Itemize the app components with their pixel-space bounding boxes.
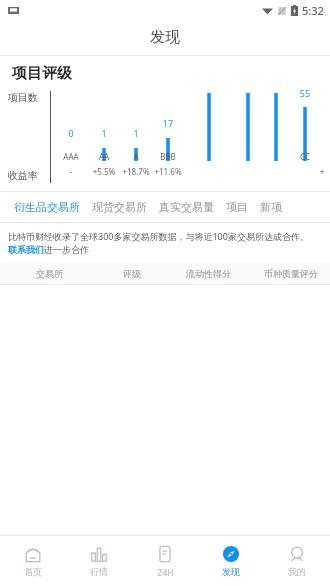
staticText: 币种质量评分: [264, 268, 318, 279]
staticText: 1: [88, 127, 120, 139]
staticText: 首页: [24, 566, 42, 577]
staticText: 55: [289, 87, 321, 99]
button[interactable]: 首页: [0, 536, 66, 586]
staticText: BBB: [148, 151, 188, 162]
staticText: 进一步合作: [44, 244, 89, 255]
staticText: 评级: [123, 268, 141, 279]
staticText: 1: [120, 127, 152, 139]
staticText: 收益率: [8, 169, 38, 182]
staticText: +18.7%: [114, 166, 158, 177]
staticText: 项目数: [8, 91, 38, 104]
button[interactable]: 行情: [66, 536, 132, 586]
staticText: 现货交易所: [92, 200, 147, 214]
button[interactable]: 联系我们: [8, 244, 44, 255]
staticText: A: [116, 151, 156, 162]
staticText: 24H: [157, 566, 174, 578]
staticText: 17: [152, 117, 184, 129]
staticText: -: [49, 166, 93, 177]
staticText: 真实交易量: [159, 200, 214, 214]
staticText: +11.6%: [146, 166, 190, 177]
button[interactable]: 24H: [132, 536, 198, 586]
staticText: 流动性得分: [186, 268, 231, 279]
staticText: 项目评级: [12, 64, 72, 83]
staticText: 发现: [150, 28, 180, 47]
staticText: 5:32: [302, 3, 324, 18]
staticText: 交易所: [36, 268, 63, 279]
staticText: 0: [55, 127, 87, 139]
staticText: AA: [84, 151, 124, 162]
staticText: AAA: [51, 151, 91, 162]
staticText: 行情: [90, 566, 108, 577]
button[interactable]: 现货交易所: [86, 192, 153, 222]
button[interactable]: 我的: [264, 536, 330, 586]
button[interactable]: 新项: [254, 192, 288, 222]
staticText: 项目: [226, 200, 248, 214]
staticText: 新项: [260, 200, 282, 214]
staticText: 发现: [222, 566, 240, 577]
staticText: +: [300, 166, 330, 177]
button[interactable]: 真实交易量: [153, 192, 220, 222]
staticText: 比特币财经收录了全球300多家交易所数据，与将近100家交易所达成合作。: [8, 230, 309, 242]
staticText: 衍生品交易所: [14, 200, 80, 214]
staticText: +5.5%: [82, 166, 126, 177]
button[interactable]: 项目: [220, 192, 254, 222]
staticText: 我的: [288, 566, 306, 577]
button[interactable]: 发现: [198, 536, 264, 586]
button[interactable]: 衍生品交易所: [8, 192, 86, 222]
staticText: CC: [285, 151, 325, 162]
